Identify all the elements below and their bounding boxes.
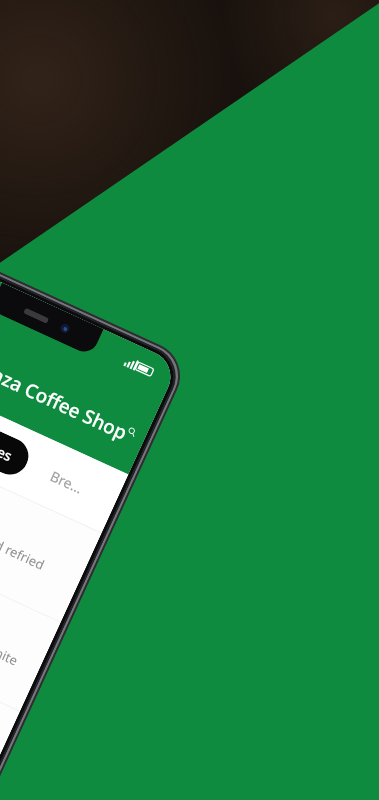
button[interactable]: Breakfast hours [0,596,20,800]
staticText: Cilantro lime rice, brown rice and white… [0,554,28,689]
staticText: Sides [0,433,15,465]
button[interactable]: Sides [0,418,34,481]
button[interactable]: Rice [0,507,61,711]
staticText: Black beans, pinto beans and refried bea… [0,465,68,600]
button[interactable]: Breakfast [28,451,110,515]
button[interactable]: Search [117,413,144,459]
staticText: Breakfast [47,466,91,500]
button[interactable]: Beans [0,418,101,622]
staticText: The Plaza Coffee Shop [0,338,132,446]
